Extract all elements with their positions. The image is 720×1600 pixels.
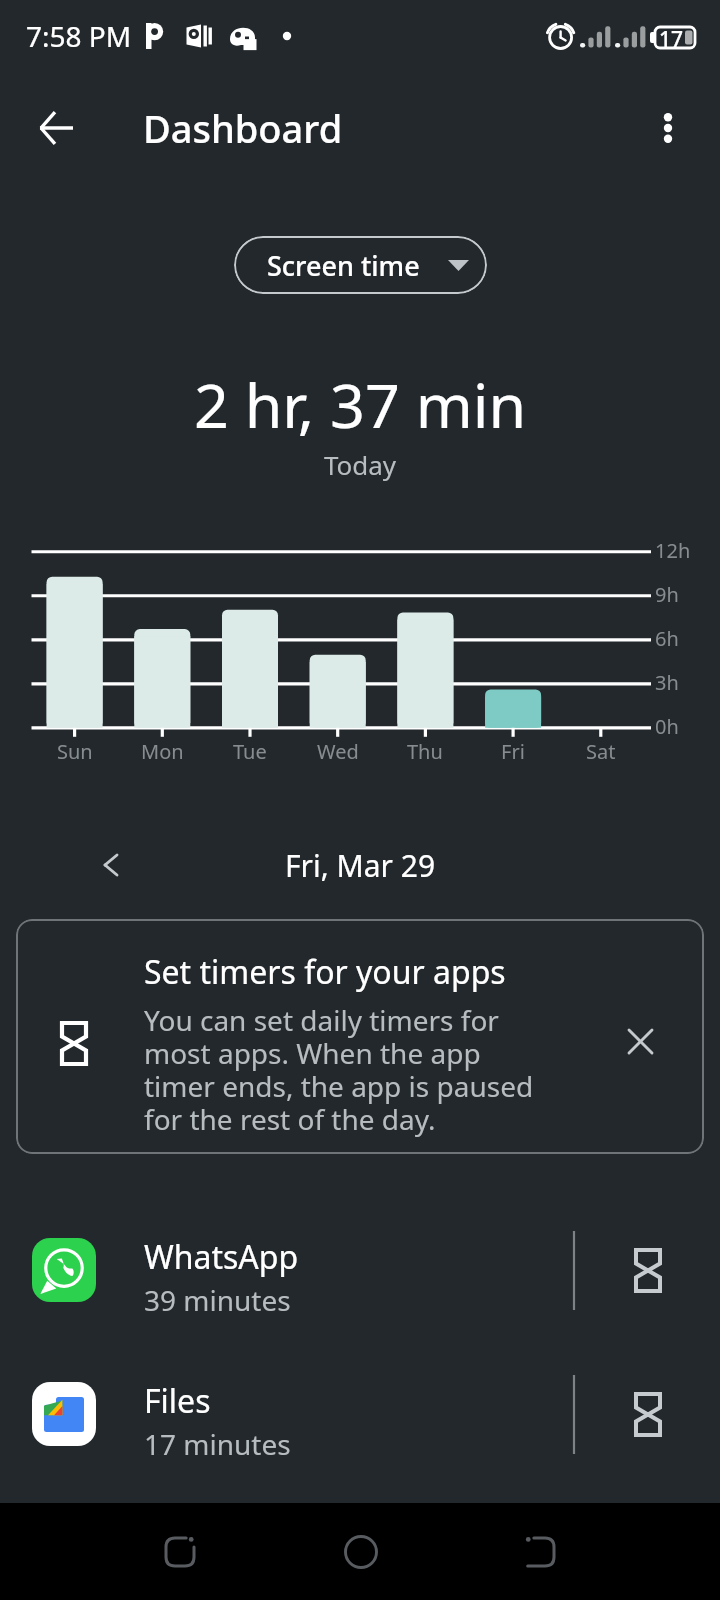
- staticText: 17 minutes: [144, 1425, 291, 1463]
- staticText: 6h: [655, 625, 679, 652]
- staticText: 7:58 PM: [26, 17, 132, 55]
- button[interactable]: Home: [316, 1503, 406, 1600]
- button[interactable]: Dismiss: [607, 1008, 673, 1074]
- button[interactable]: Set app timer for Files: [614, 1380, 682, 1448]
- staticText: Wed: [317, 738, 359, 765]
- button[interactable]: Set app timer for WhatsApp: [614, 1236, 682, 1304]
- staticText: 9h: [655, 581, 679, 608]
- staticText: Set timers for your apps: [144, 950, 506, 994]
- staticText: You can set daily timers for most apps. …: [144, 1001, 556, 1138]
- button[interactable]: WhatsApp: [0, 1238, 720, 1326]
- staticText: WhatsApp: [144, 1235, 299, 1279]
- button[interactable]: Files: [0, 1382, 720, 1470]
- staticText: Files: [144, 1379, 211, 1423]
- button[interactable]: Navigate up: [24, 96, 88, 160]
- staticText: Mon: [141, 738, 184, 765]
- staticText: Thu: [407, 738, 443, 765]
- staticText: 0h: [655, 713, 679, 740]
- staticText: Sat: [586, 738, 616, 765]
- staticText: Tue: [233, 738, 267, 765]
- staticText: Today: [0, 447, 720, 482]
- button[interactable]: Screen time: [234, 236, 487, 294]
- staticText: 3h: [655, 669, 679, 696]
- staticText: 2 hr, 37 min: [0, 363, 720, 446]
- button[interactable]: Set timers for your apps: [16, 919, 704, 1154]
- staticText: 17: [659, 25, 684, 54]
- staticText: 12h: [655, 537, 691, 564]
- button[interactable]: Recent apps: [135, 1503, 225, 1600]
- staticText: Fri: [501, 738, 525, 765]
- staticText: 39 minutes: [144, 1281, 291, 1319]
- staticText: Sun: [57, 738, 93, 765]
- staticText: Fri, Mar 29: [0, 845, 720, 886]
- staticText: Screen time: [267, 247, 420, 284]
- button[interactable]: More options: [636, 96, 700, 160]
- staticText: Dashboard: [143, 102, 343, 154]
- button[interactable]: Previous day: [80, 834, 142, 896]
- button[interactable]: Back: [495, 1503, 585, 1600]
